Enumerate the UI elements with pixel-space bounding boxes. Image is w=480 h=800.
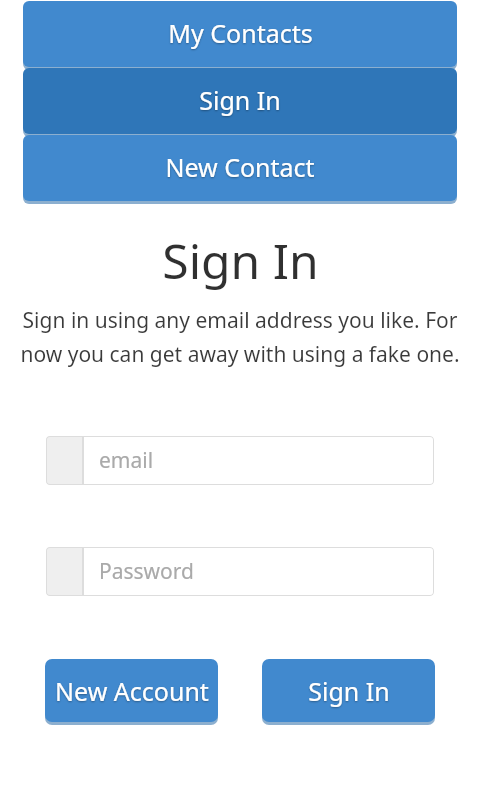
staticText: Password: [99, 557, 194, 586]
staticText: New Contact: [165, 150, 315, 184]
button[interactable]: My Contacts: [23, 1, 457, 71]
staticText: Sign In: [308, 674, 390, 708]
staticText: My Contacts: [168, 16, 313, 50]
button[interactable]: Password: [46, 547, 434, 596]
staticText: Sign in using any email address you like…: [16, 306, 464, 368]
button[interactable]: email: [46, 436, 434, 485]
staticText: Sign In: [162, 228, 319, 293]
button[interactable]: Sign In: [23, 68, 457, 138]
staticText: email: [99, 446, 154, 475]
staticText: Sign In: [199, 83, 281, 117]
button[interactable]: New Account: [45, 659, 218, 726]
staticText: New Account: [55, 674, 209, 708]
button[interactable]: Sign In: [262, 659, 435, 726]
button[interactable]: New Contact: [23, 135, 457, 205]
